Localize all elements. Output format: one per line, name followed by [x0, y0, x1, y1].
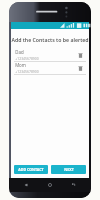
staticText: +12345678900 [15, 69, 39, 74]
button[interactable]: Delete Dad [75, 50, 85, 60]
button[interactable]: Mom [11, 62, 89, 74]
staticText: Add the Contacts to be alerted [11, 36, 89, 43]
staticText: +12345678900 [15, 56, 39, 61]
button[interactable]: Dad [11, 49, 89, 61]
button[interactable]: Delete Mom [75, 63, 85, 73]
button[interactable]: Back [21, 180, 31, 190]
staticText: Dad [15, 49, 24, 55]
staticText: ADD CONTACT [18, 167, 44, 172]
button[interactable]: Home [45, 180, 55, 190]
button[interactable]: ADD CONTACT [14, 165, 48, 174]
staticText: NEXT [64, 167, 74, 172]
button[interactable]: NEXT [51, 165, 86, 174]
button[interactable]: Recent apps [69, 180, 79, 190]
staticText: Mom [15, 62, 26, 68]
